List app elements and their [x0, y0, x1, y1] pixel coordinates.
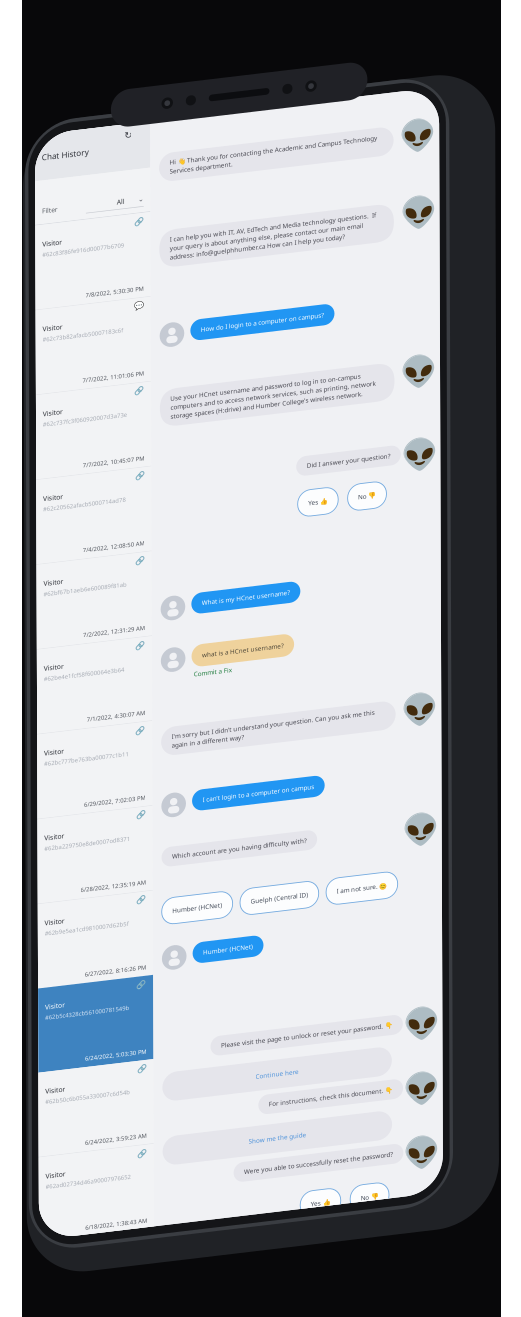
staticText: #62c737fc3f060920007d3a73e [20, 854, 270, 877]
staticText: 7/4/2022, 12:08:50 AM [137, 1243, 321, 1266]
button[interactable]: 🔗 [0, 1282, 341, 1317]
staticText: Filter [20, 215, 66, 242]
staticText: Hi 👋 Thank you for contacting the Academ… [398, 117, 521, 169]
staticText: How do I login to a computer on campus? [489, 626, 521, 651]
staticText: 🔗 [291, 1039, 321, 1066]
staticText: 7/8/2022, 5:30:30 PM [148, 484, 321, 507]
staticText: #62c20562afacb5000714ad78 [20, 1107, 265, 1130]
staticText: ⌄ [304, 217, 321, 240]
staticText: Visitor [20, 314, 79, 341]
staticText: 🔗 [291, 280, 321, 307]
staticText: Visitor [20, 1073, 79, 1100]
button[interactable]: 💬 [0, 523, 341, 774]
staticText: All [241, 215, 264, 242]
staticText: 🔗 [291, 786, 321, 813]
staticText: 7/7/2022, 10:45:07 PM [138, 990, 321, 1013]
button[interactable]: 🔗 [0, 270, 341, 521]
button[interactable]: 🔗 [0, 776, 341, 1027]
button[interactable]: 🔗 [0, 1029, 341, 1280]
staticText: I can help you with IT, AV, EdTech and M… [398, 347, 521, 425]
staticText: Visitor [20, 567, 79, 594]
staticText: Visitor [20, 820, 79, 847]
staticText: Chat History [20, 53, 159, 85]
staticText: 7/7/2022, 11:01:06 PM [138, 737, 321, 760]
staticText: #62c73b82afacb50007183c6f [20, 601, 259, 624]
staticText: #62c83f86fe916d00077b6709 [20, 348, 263, 371]
staticText: Use your HCnet username and password to … [398, 821, 521, 899]
